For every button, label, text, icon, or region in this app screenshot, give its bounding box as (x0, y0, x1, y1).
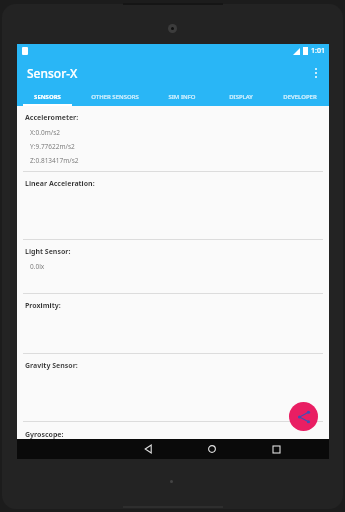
staticText: 0.0lx (30, 262, 45, 271)
button[interactable]: OTHER SENSORS (77, 88, 152, 106)
staticText: Gyroscope: (25, 430, 64, 439)
staticText: Proximity: (25, 301, 61, 311)
button[interactable]: DISPLAY (211, 88, 270, 106)
staticText: X:0.0m/s2 (30, 128, 61, 137)
button[interactable]: Back (137, 439, 159, 459)
staticText: SIM INFO (168, 93, 196, 101)
button[interactable]: DEVELOPER (270, 88, 329, 106)
staticText: Gravity Sensor: (25, 361, 78, 371)
button[interactable]: SIM INFO (152, 88, 211, 106)
button[interactable]: More options (303, 60, 329, 86)
staticText: Light Sensor: (25, 247, 71, 257)
staticText: SENSORS (34, 93, 61, 101)
staticText: Sensor-X (27, 65, 78, 81)
button[interactable]: SENSORS (17, 88, 77, 106)
staticText: Accelerometer: (25, 113, 79, 123)
staticText: DEVELOPER (283, 93, 317, 101)
staticText: Y:9.77622m/s2 (30, 142, 75, 151)
staticText: OTHER SENSORS (91, 93, 139, 101)
button[interactable]: Recents (265, 439, 287, 459)
staticText: 1:01 (311, 46, 325, 56)
staticText: Linear Acceleration: (25, 179, 95, 189)
staticText: Z:0.813417m/s2 (30, 156, 79, 165)
staticText: DISPLAY (229, 93, 253, 101)
button[interactable]: Home (201, 439, 223, 459)
button[interactable]: Share (289, 402, 318, 431)
